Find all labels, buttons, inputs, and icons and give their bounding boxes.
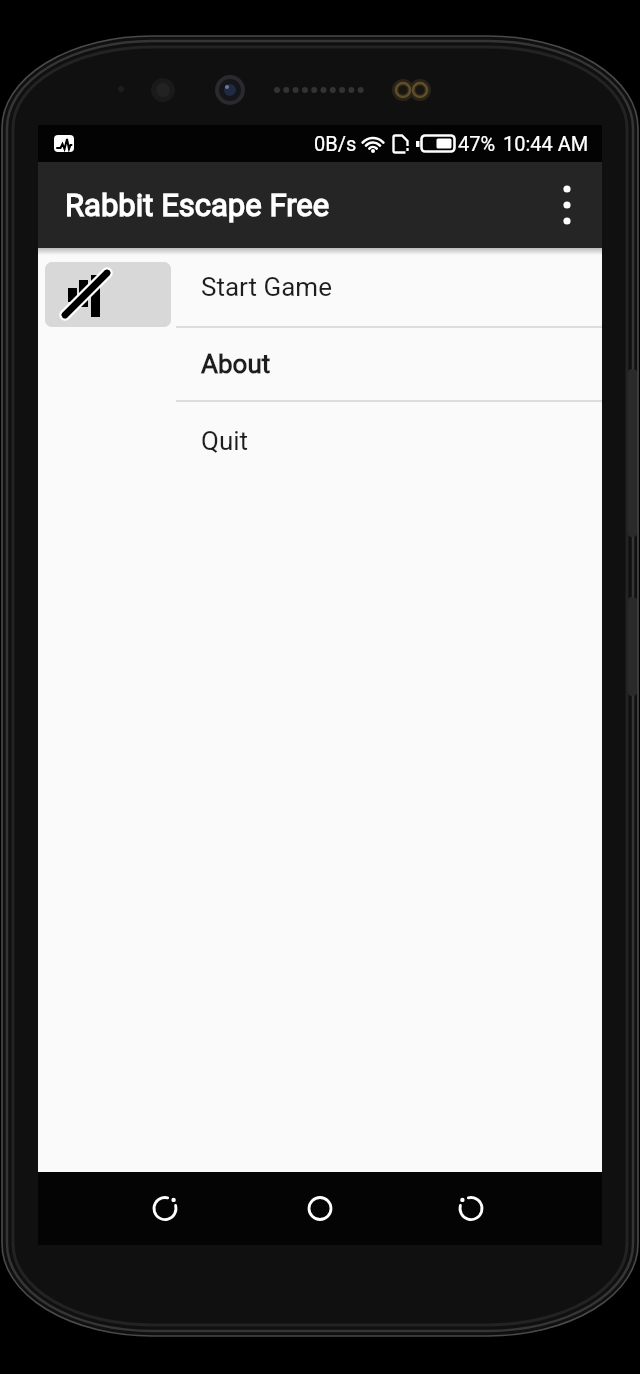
- staticText: 47%: [458, 132, 496, 155]
- button[interactable]: Quit: [38, 402, 602, 479]
- button[interactable]: [537, 162, 597, 248]
- staticText: Rabbit Escape Free: [65, 187, 330, 223]
- button[interactable]: [45, 262, 171, 327]
- staticText: About: [201, 349, 271, 379]
- staticText: Quit: [201, 426, 249, 456]
- staticText: Start Game: [201, 272, 332, 302]
- button[interactable]: [435, 1172, 507, 1245]
- staticText: 10:44 AM: [503, 132, 589, 155]
- button[interactable]: [129, 1172, 201, 1245]
- button[interactable]: [284, 1172, 356, 1245]
- button[interactable]: Start Game: [38, 248, 602, 326]
- button[interactable]: About: [38, 328, 602, 400]
- staticText: 0B/s: [314, 132, 357, 155]
